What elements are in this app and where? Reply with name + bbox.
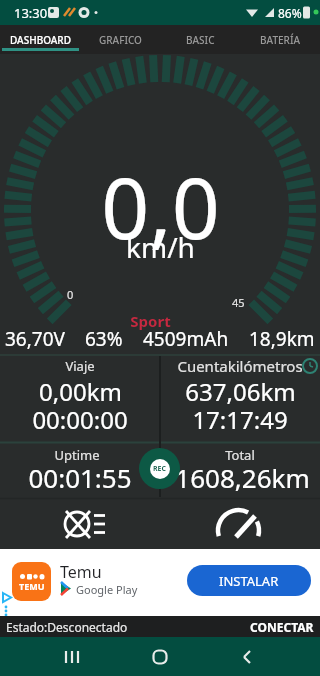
staticText: 0 — [67, 287, 74, 302]
button[interactable] — [0, 444, 160, 498]
button[interactable]: TEMU — [0, 549, 320, 616]
button[interactable]: INSTALAR — [187, 565, 311, 596]
staticText: 00:01:55 — [28, 460, 132, 495]
staticText: 637,06km — [185, 375, 296, 408]
staticText: Viaje — [65, 357, 95, 375]
staticText: Estado:Desconectado — [6, 619, 128, 635]
button[interactable] — [160, 356, 320, 442]
staticText: CONECTAR — [250, 619, 314, 635]
staticText: TEMU — [19, 580, 45, 592]
staticText: 63% — [85, 326, 123, 352]
staticText: DASHBOARD — [10, 33, 71, 47]
button[interactable] — [0, 356, 160, 442]
button[interactable] — [231, 641, 263, 673]
staticText: Temu — [60, 561, 102, 583]
staticText: BASIC — [186, 33, 215, 47]
staticText: 86% — [278, 5, 302, 21]
staticText: 4509mAh — [143, 326, 229, 352]
button[interactable]: GRAFICO — [80, 25, 160, 54]
staticText: 45 — [232, 295, 245, 310]
staticText: 0,00km — [39, 375, 122, 408]
staticText: 00:00:00 — [32, 403, 128, 436]
staticText: Uptime — [54, 446, 100, 464]
staticText: Google Play — [76, 582, 138, 597]
button[interactable]: DASHBOARD — [0, 25, 80, 54]
staticText: BATERÍA — [260, 33, 300, 47]
staticText: 1608,26km — [175, 460, 310, 495]
staticText: 13:30 — [14, 4, 48, 22]
button[interactable] — [56, 641, 88, 673]
button[interactable] — [210, 503, 266, 551]
button[interactable] — [160, 444, 320, 498]
staticText: INSTALAR — [219, 572, 279, 590]
button[interactable] — [47, 501, 117, 547]
staticText: 36,70V — [5, 326, 65, 352]
button[interactable]: BASIC — [160, 25, 240, 54]
staticText: Total — [225, 446, 255, 464]
button[interactable]: REC — [139, 448, 180, 489]
button[interactable] — [144, 641, 176, 673]
staticText: 0,0 — [101, 149, 220, 263]
staticText: km/h — [126, 228, 195, 266]
staticText: REC — [153, 464, 167, 474]
button[interactable]: CONECTAR — [250, 616, 320, 637]
button[interactable]: BATERÍA — [240, 25, 320, 54]
staticText: 18,9km — [249, 326, 315, 352]
staticText: Cuentakilómetros — [177, 356, 303, 376]
staticText: Sport — [130, 311, 171, 331]
staticText: GRAFICO — [99, 33, 142, 47]
staticText: 17:17:49 — [192, 403, 288, 436]
